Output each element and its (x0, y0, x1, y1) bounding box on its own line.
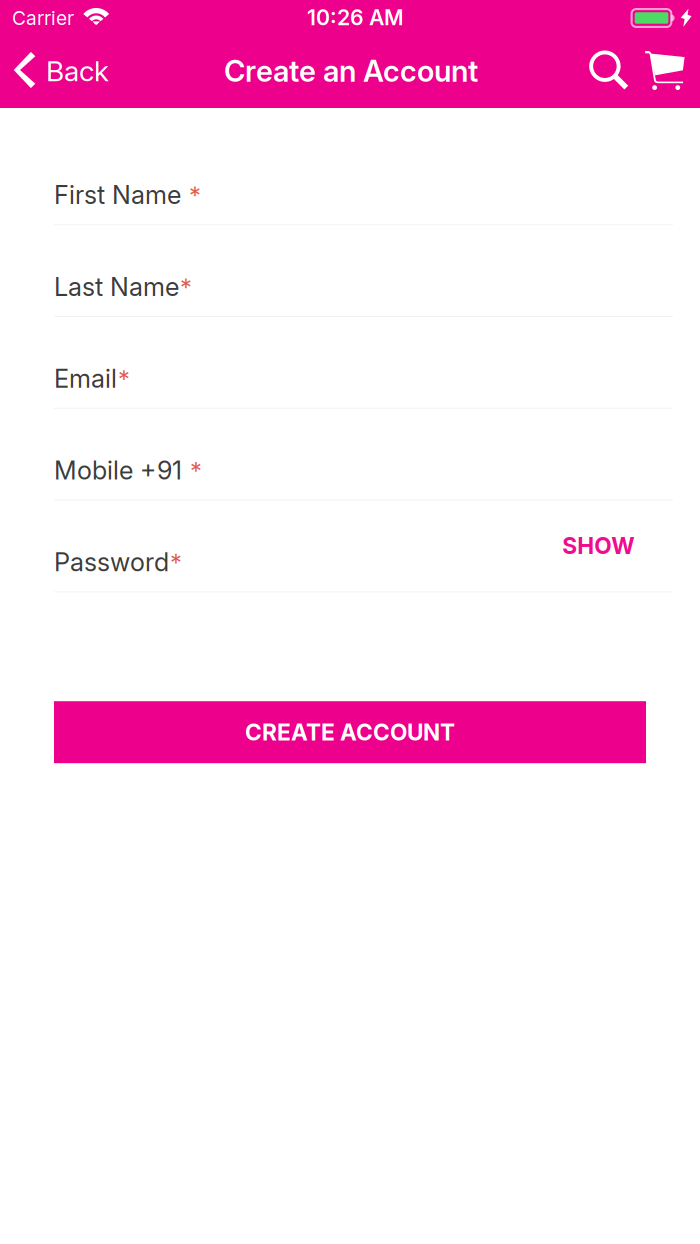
button[interactable]: SHOW (544, 520, 646, 569)
staticText: * (190, 456, 202, 485)
staticText: CREATE ACCOUNT (245, 718, 455, 746)
staticText: * (170, 548, 182, 577)
staticText: * (189, 180, 201, 209)
staticText: 10:26 AM (307, 5, 404, 30)
staticText: Carrier (12, 6, 74, 30)
button[interactable]: Search (577, 43, 638, 100)
staticText: Mobile +91 (54, 455, 182, 486)
staticText: * (180, 272, 192, 301)
staticText: Back (46, 54, 109, 88)
button[interactable]: Back (0, 45, 119, 99)
staticText: * (118, 364, 130, 393)
staticText: SHOW (562, 532, 634, 559)
staticText: Password (54, 547, 169, 577)
staticText: Last Name (54, 271, 179, 302)
staticText: Email (54, 363, 117, 394)
button[interactable]: CREATE ACCOUNT (54, 701, 646, 763)
staticText: First Name (54, 179, 181, 210)
staticText: Create an Account (224, 53, 478, 89)
button[interactable]: Cart (638, 43, 700, 100)
